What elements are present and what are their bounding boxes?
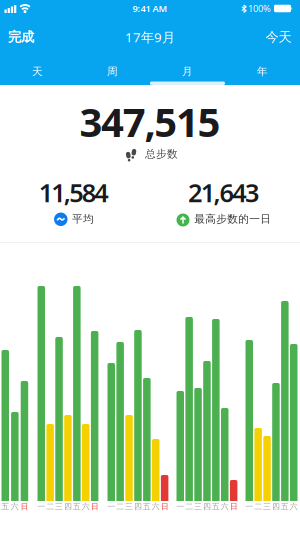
staticText: 9:41 AM <box>132 2 167 15</box>
staticText: 二 <box>46 502 54 511</box>
staticText: 一 <box>37 502 45 511</box>
staticText: 一 <box>176 502 184 511</box>
staticText: 347,515 <box>79 95 221 148</box>
button[interactable]: 年 <box>225 58 300 85</box>
staticText: 一 <box>107 502 115 511</box>
staticText: 五 <box>1 502 9 511</box>
staticText: 17年9月 <box>125 28 175 46</box>
staticText: 六 <box>221 502 229 511</box>
staticText: 21,643 <box>188 176 259 209</box>
staticText: 二 <box>116 502 124 511</box>
staticText: 100% <box>248 2 271 15</box>
button[interactable]: 完成 <box>0 21 42 53</box>
staticText: 日 <box>91 502 99 511</box>
staticText: 一 <box>245 502 253 511</box>
staticText: 五 <box>212 502 220 511</box>
button[interactable]: 今天 <box>257 21 299 53</box>
staticText: 11,584 <box>39 176 108 209</box>
button[interactable]: 周 <box>75 58 150 85</box>
staticText: 周 <box>107 65 118 78</box>
staticText: 日 <box>230 502 238 511</box>
staticText: 五 <box>281 502 289 511</box>
button[interactable]: 月 <box>150 58 225 85</box>
staticText: 四 <box>64 502 72 511</box>
staticText: 平均 <box>72 212 94 225</box>
staticText: 日 <box>161 502 169 511</box>
staticText: 三 <box>263 502 271 511</box>
staticText: 总步数 <box>145 147 178 160</box>
staticText: 最高步数的一日 <box>194 212 271 225</box>
button[interactable]: 天 <box>0 58 75 85</box>
staticText: 四 <box>272 502 280 511</box>
staticText: 三 <box>194 502 202 511</box>
staticText: 二 <box>254 502 262 511</box>
staticText: 三 <box>125 502 133 511</box>
staticText: 五 <box>73 502 81 511</box>
staticText: 月 <box>182 65 193 78</box>
staticText: 年 <box>257 65 268 78</box>
staticText: 四 <box>203 502 211 511</box>
staticText: 完成 <box>8 29 34 45</box>
staticText: 日 <box>20 502 28 511</box>
staticText: 天 <box>32 65 43 78</box>
staticText: 五 <box>143 502 151 511</box>
staticText: 六 <box>82 502 90 511</box>
staticText: 六 <box>11 502 19 511</box>
staticText: 四 <box>134 502 142 511</box>
staticText: 今天 <box>265 29 291 45</box>
staticText: 二 <box>185 502 193 511</box>
staticText: 六 <box>152 502 160 511</box>
staticText: 六 <box>290 502 298 511</box>
staticText: 三 <box>55 502 63 511</box>
